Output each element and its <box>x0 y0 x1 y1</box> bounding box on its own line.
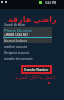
staticText: اتصل بنا الآن للمزيد <box>15 74 55 81</box>
staticText: 3:34 PM <box>45 1 57 5</box>
staticText: Account balance <box>4 39 28 43</box>
button[interactable]: Transfer Number <box>23 67 50 72</box>
button[interactable]: Phone Number <box>3 27 52 43</box>
staticText: راضي هارقة <box>8 13 57 24</box>
staticText: Transfer Number <box>24 68 49 72</box>
staticText: another account <box>4 45 28 49</box>
staticText: Recipient account <box>4 51 29 55</box>
staticText: Phone Number <box>4 28 33 33</box>
staticText: Saudi Arabia <box>4 22 25 27</box>
staticText: +96655 1234 567 <box>4 33 28 37</box>
staticText: transfer the amount <box>4 57 33 61</box>
